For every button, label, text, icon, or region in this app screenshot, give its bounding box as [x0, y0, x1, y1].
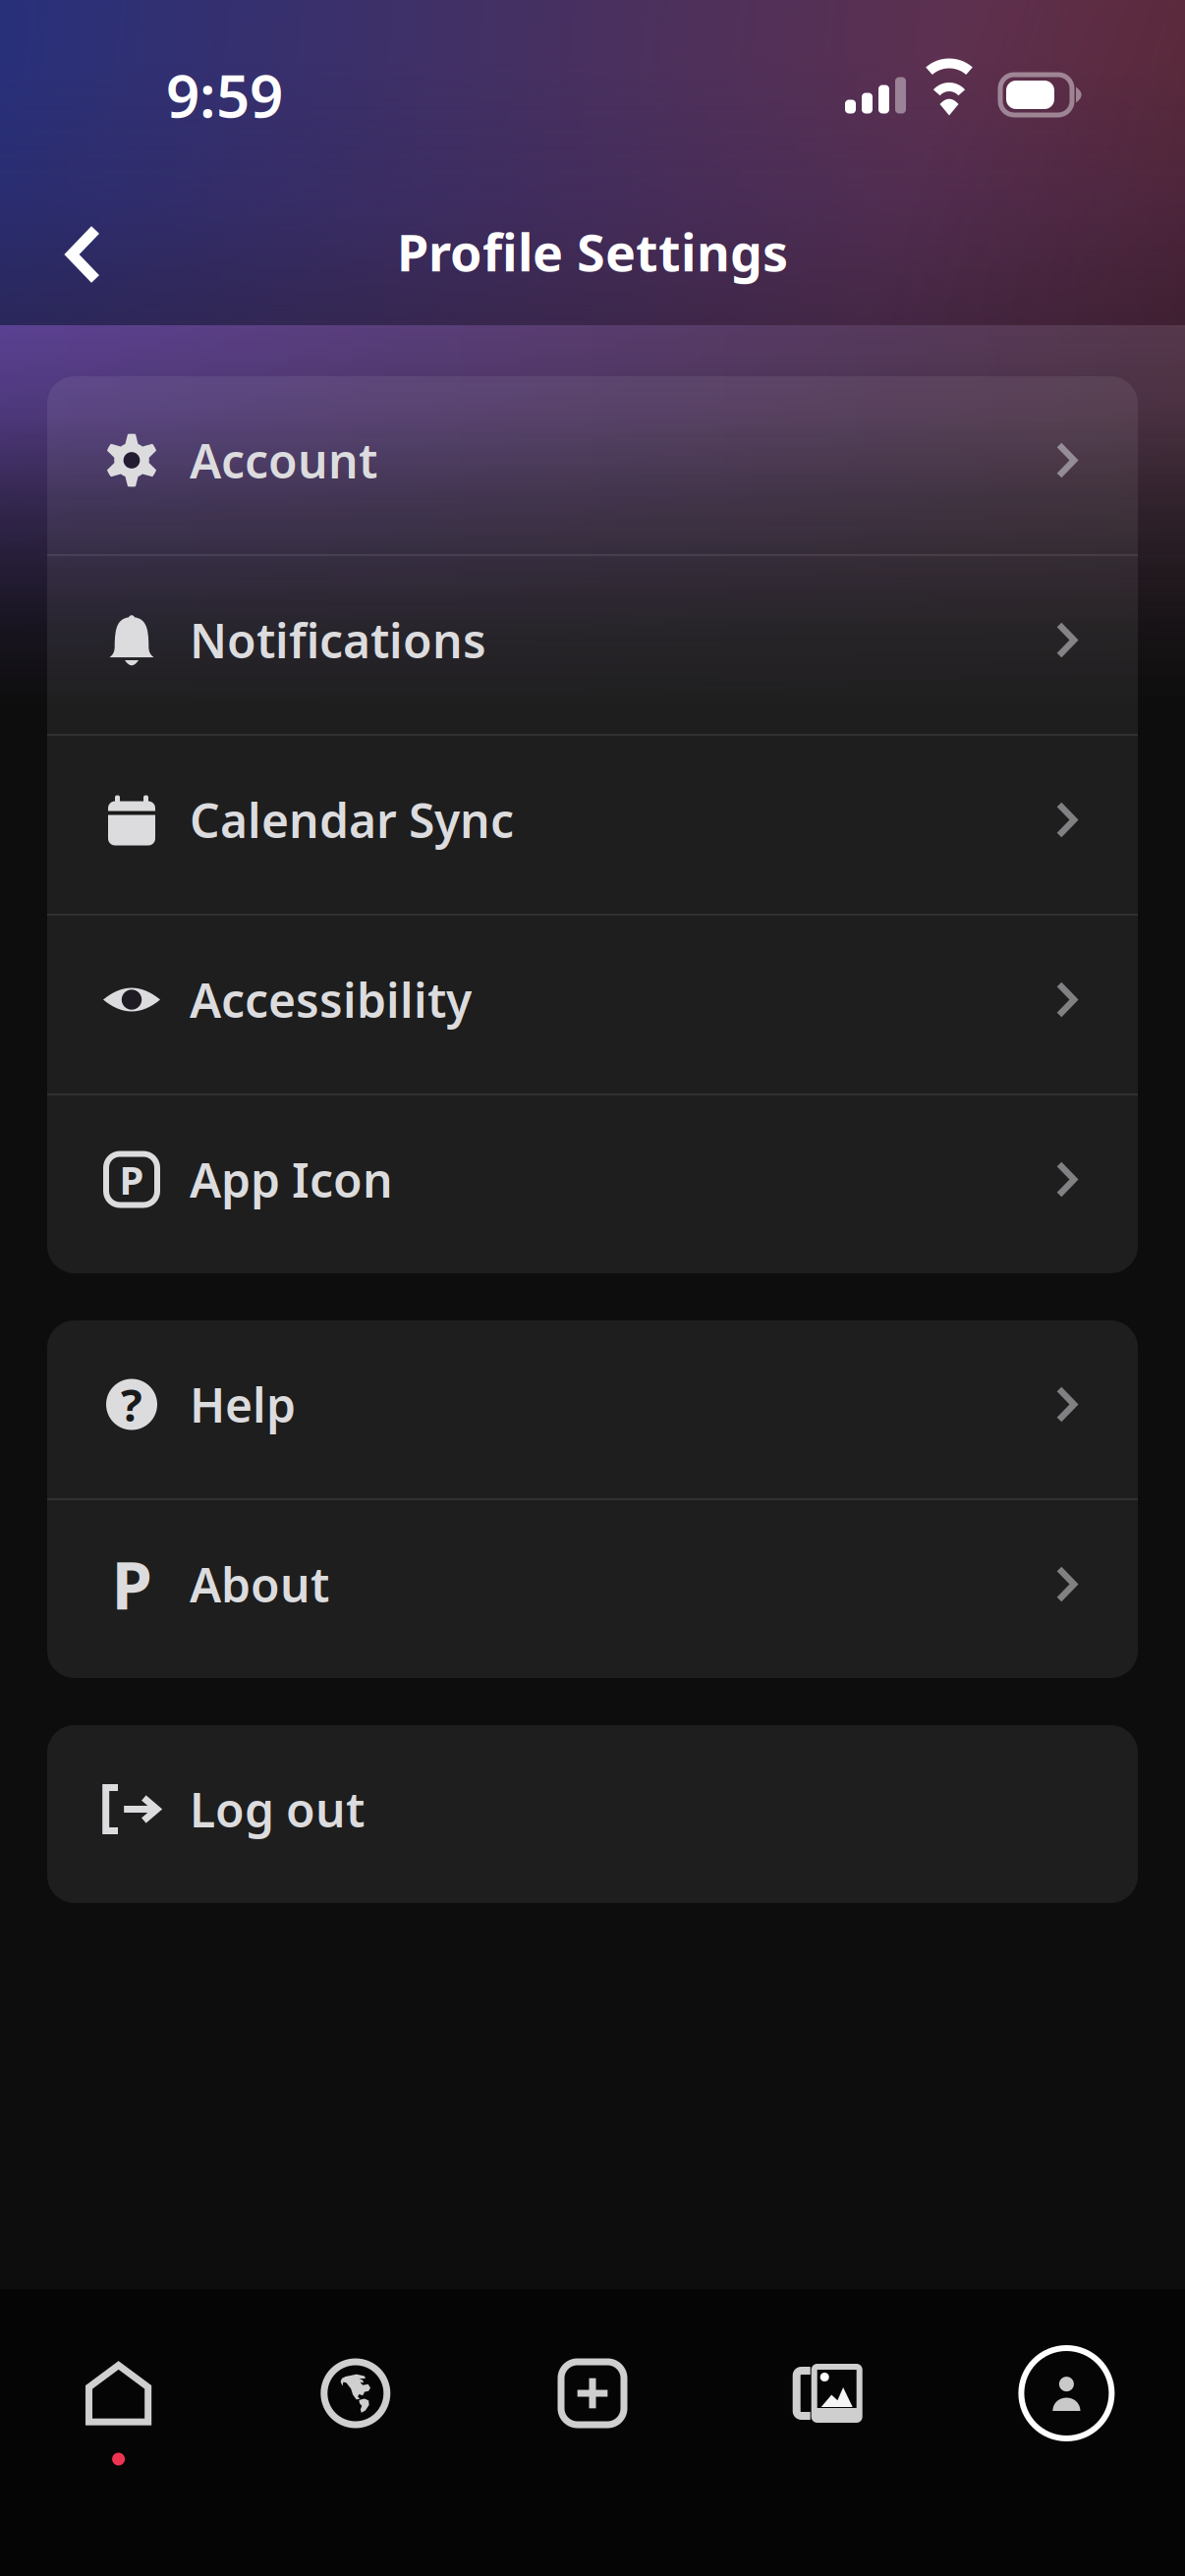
- staticText: P: [112, 1541, 152, 1628]
- staticText: Log out: [190, 1778, 365, 1840]
- staticText: Help: [190, 1373, 296, 1436]
- button[interactable]: ?: [47, 1320, 1138, 1498]
- staticText: App Icon: [190, 1148, 393, 1211]
- staticText: Accessibility: [190, 968, 472, 1031]
- staticText: Notifications: [190, 609, 486, 671]
- button[interactable]: Profile: [948, 2289, 1185, 2576]
- button[interactable]: P: [47, 1095, 1138, 1273]
- staticText: Account: [190, 429, 377, 492]
- staticText: ?: [121, 1375, 142, 1434]
- button[interactable]: Library: [711, 2289, 948, 2576]
- button[interactable]: Create: [474, 2289, 711, 2576]
- button[interactable]: Account: [47, 376, 1138, 554]
- staticText: P: [119, 1153, 144, 1205]
- button[interactable]: Log out: [47, 1725, 1138, 1903]
- button[interactable]: Accessibility: [47, 916, 1138, 1093]
- staticText: Profile Settings: [397, 218, 788, 286]
- staticText: Calendar Sync: [190, 789, 514, 851]
- button[interactable]: Notifications: [47, 556, 1138, 734]
- button[interactable]: Home: [0, 2289, 237, 2576]
- button[interactable]: Calendar Sync: [47, 736, 1138, 914]
- button[interactable]: P: [47, 1500, 1138, 1678]
- staticText: 9:59: [166, 56, 283, 134]
- button[interactable]: Back: [26, 204, 123, 305]
- button[interactable]: Explore: [237, 2289, 474, 2576]
- staticText: About: [190, 1553, 329, 1615]
